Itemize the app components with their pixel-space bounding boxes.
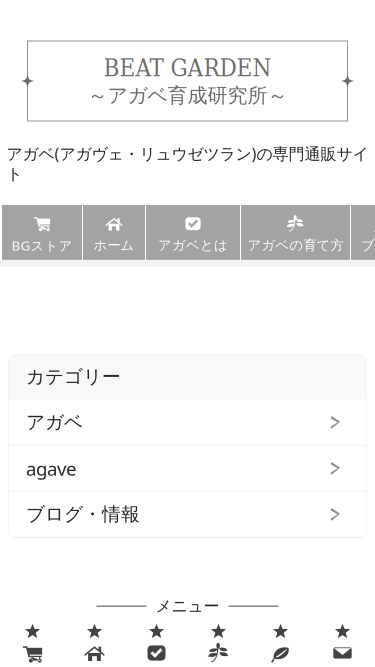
staticText: アガベ xyxy=(26,411,83,434)
staticText: アガベとは xyxy=(158,237,228,254)
staticText: カテゴリー xyxy=(26,365,121,388)
button[interactable]: Grow xyxy=(187,619,249,667)
staticText: ～アガベ育成研究所～ xyxy=(87,83,287,108)
staticText: アガベの育て方 xyxy=(247,237,343,254)
button[interactable]: ブログ xyxy=(351,205,375,260)
staticText: BEAT GARDEN xyxy=(103,54,271,82)
staticText: BGストア xyxy=(11,236,72,254)
button[interactable]: About xyxy=(125,619,187,667)
staticText: ホーム xyxy=(93,237,134,254)
button[interactable]: Home xyxy=(63,619,125,667)
button[interactable]: アガベ xyxy=(8,400,367,446)
button[interactable]: ホーム xyxy=(83,205,145,260)
button[interactable]: agave xyxy=(8,446,367,492)
button[interactable]: Blog xyxy=(249,619,311,667)
button[interactable]: ブログ・情報 xyxy=(8,492,367,538)
button[interactable]: Contact xyxy=(311,619,373,667)
button[interactable]: アガベとは xyxy=(146,205,240,260)
staticText: ブログ xyxy=(361,237,375,254)
button[interactable]: Shop xyxy=(1,619,63,667)
staticText: ブログ・情報 xyxy=(26,503,140,526)
staticText: アガベ(アガヴェ・リュウゼツラン)の専門通販サイト xyxy=(6,143,368,184)
button[interactable]: アガベの育て方 xyxy=(241,205,350,260)
button[interactable]: BGストア xyxy=(2,205,82,260)
staticText: メニュー xyxy=(155,596,219,616)
staticText: agave xyxy=(26,456,77,481)
